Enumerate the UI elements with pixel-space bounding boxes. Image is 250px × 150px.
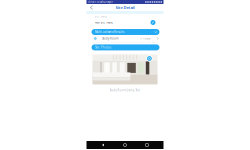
staticText: driver.roadsurveyor	[88, 0, 113, 4]
staticText: Study Room Living Site	[109, 88, 140, 92]
staticText: New Site Name	[94, 21, 113, 24]
button[interactable]: Photo options	[146, 55, 152, 62]
staticText: Study Room	[102, 37, 118, 40]
button[interactable]: Back	[97, 141, 108, 149]
staticText: Multi-cut/area Results	[95, 30, 124, 34]
staticText: Site Photos	[95, 46, 111, 49]
staticText: Site Detail	[115, 5, 134, 10]
button[interactable]: Multi-cut/area Results	[91, 29, 159, 35]
button[interactable]: Study Room	[86, 35, 163, 42]
button[interactable]: Back	[86, 4, 96, 11]
staticText: Site Name	[94, 15, 107, 18]
button[interactable]: Home	[119, 141, 130, 149]
button[interactable]: Edit site name	[150, 20, 155, 25]
button[interactable]: Site Photos	[91, 44, 159, 50]
staticText: (Primary)	[140, 37, 151, 40]
button[interactable]: Recent apps	[141, 141, 152, 149]
